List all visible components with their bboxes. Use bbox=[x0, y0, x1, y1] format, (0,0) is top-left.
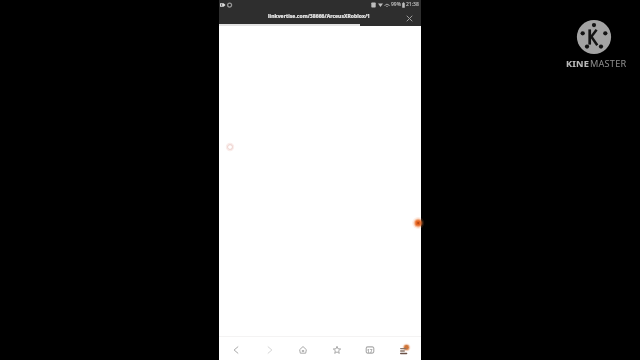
staticText: 17 bbox=[367, 348, 373, 354]
button[interactable]: Menu bbox=[390, 336, 418, 360]
staticText: KINE bbox=[566, 57, 590, 70]
staticText: linkvertise.com/38666/ArceusXRoblox/1 bbox=[218, 13, 420, 20]
staticText: 21:38 bbox=[406, 1, 419, 8]
button[interactable]: Close bbox=[400, 10, 418, 26]
button[interactable]: Bookmarks bbox=[323, 336, 351, 360]
staticText: MASTER bbox=[590, 57, 627, 70]
button[interactable]: Address bar bbox=[219, 8, 421, 24]
button[interactable]: Forward bbox=[256, 336, 284, 360]
button[interactable]: Tabs bbox=[356, 336, 384, 360]
button[interactable] bbox=[219, 0, 421, 360]
staticText: 99% bbox=[391, 1, 401, 8]
button[interactable]: Back bbox=[222, 336, 250, 360]
button[interactable]: Home bbox=[289, 336, 317, 360]
